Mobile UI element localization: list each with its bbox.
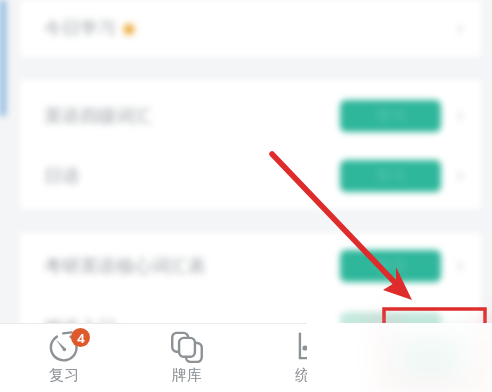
button[interactable]: 考研英语核心词汇表 — [20, 234, 481, 298]
button[interactable]: 我的 — [371, 323, 492, 392]
button[interactable]: 牌库 — [125, 323, 248, 392]
button[interactable]: 今日学习 — [20, 0, 481, 57]
button[interactable]: 统计 — [248, 323, 371, 392]
staticText: 考研英语核心词汇表 — [44, 255, 206, 278]
staticText: 日语 — [44, 165, 80, 188]
staticText: 统计 — [295, 366, 325, 385]
staticText: 英语四级词汇 — [44, 105, 152, 128]
staticText: 牌库 — [172, 366, 202, 385]
button[interactable]: 学习 — [340, 312, 441, 344]
button[interactable]: 英语四级词汇 — [20, 84, 481, 148]
staticText: 学习 — [376, 319, 406, 338]
button[interactable]: 复习 — [2, 323, 125, 392]
button[interactable]: 德语入门 — [20, 296, 481, 360]
staticText: 复习 — [49, 366, 79, 385]
button[interactable]: 日语 — [20, 144, 481, 208]
staticText: 今日学习 — [44, 17, 116, 40]
other: 复习 — [46, 330, 82, 366]
staticText: 学习 — [376, 257, 406, 276]
button[interactable]: 学习 — [340, 250, 441, 282]
staticText: 学习 — [376, 107, 406, 126]
other: 牌库 — [169, 330, 205, 366]
staticText: 4 — [77, 329, 85, 347]
button[interactable]: 学习 — [340, 100, 441, 132]
other: 统计 — [292, 330, 328, 366]
button[interactable]: 学习 — [340, 160, 441, 192]
staticText: 学习 — [376, 167, 406, 186]
staticText: 德语入门 — [44, 317, 116, 340]
